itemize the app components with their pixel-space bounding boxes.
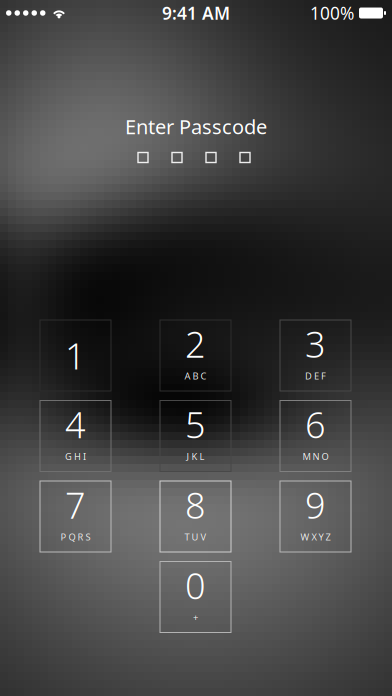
staticText: 6 (305, 400, 326, 448)
staticText: 5 (185, 400, 206, 448)
button[interactable]: 8 (160, 481, 231, 552)
staticText: 3 (305, 320, 326, 368)
staticText: JKL (186, 450, 204, 463)
button[interactable]: 0 (160, 561, 231, 632)
staticText: Enter Passcode (125, 113, 267, 140)
staticText: DEF (305, 370, 326, 382)
staticText: 7 (65, 481, 86, 529)
staticText: PQRS (60, 531, 90, 543)
staticText: 9 (305, 481, 326, 529)
button[interactable]: 7 (40, 481, 111, 552)
staticText: 1 (65, 332, 86, 379)
button[interactable]: 2 (160, 320, 231, 391)
button[interactable]: 9 (280, 481, 351, 552)
button[interactable]: 5 (160, 400, 231, 471)
button[interactable]: 4 (40, 400, 111, 471)
button[interactable]: 1 (40, 320, 111, 391)
staticText: 9:41 AM (162, 1, 230, 24)
staticText: WXYZ (300, 531, 330, 543)
button[interactable]: 3 (280, 320, 351, 391)
staticText: + (193, 611, 198, 624)
staticText: 4 (65, 400, 86, 448)
staticText: GHI (65, 450, 86, 463)
button[interactable]: 6 (280, 400, 351, 471)
staticText: 8 (185, 481, 206, 529)
staticText: ABC (184, 370, 206, 382)
staticText: 2 (185, 320, 206, 368)
staticText: MNO (302, 450, 328, 463)
staticText: TUV (184, 531, 206, 543)
staticText: 0 (185, 561, 206, 609)
staticText: 100% (310, 1, 354, 24)
